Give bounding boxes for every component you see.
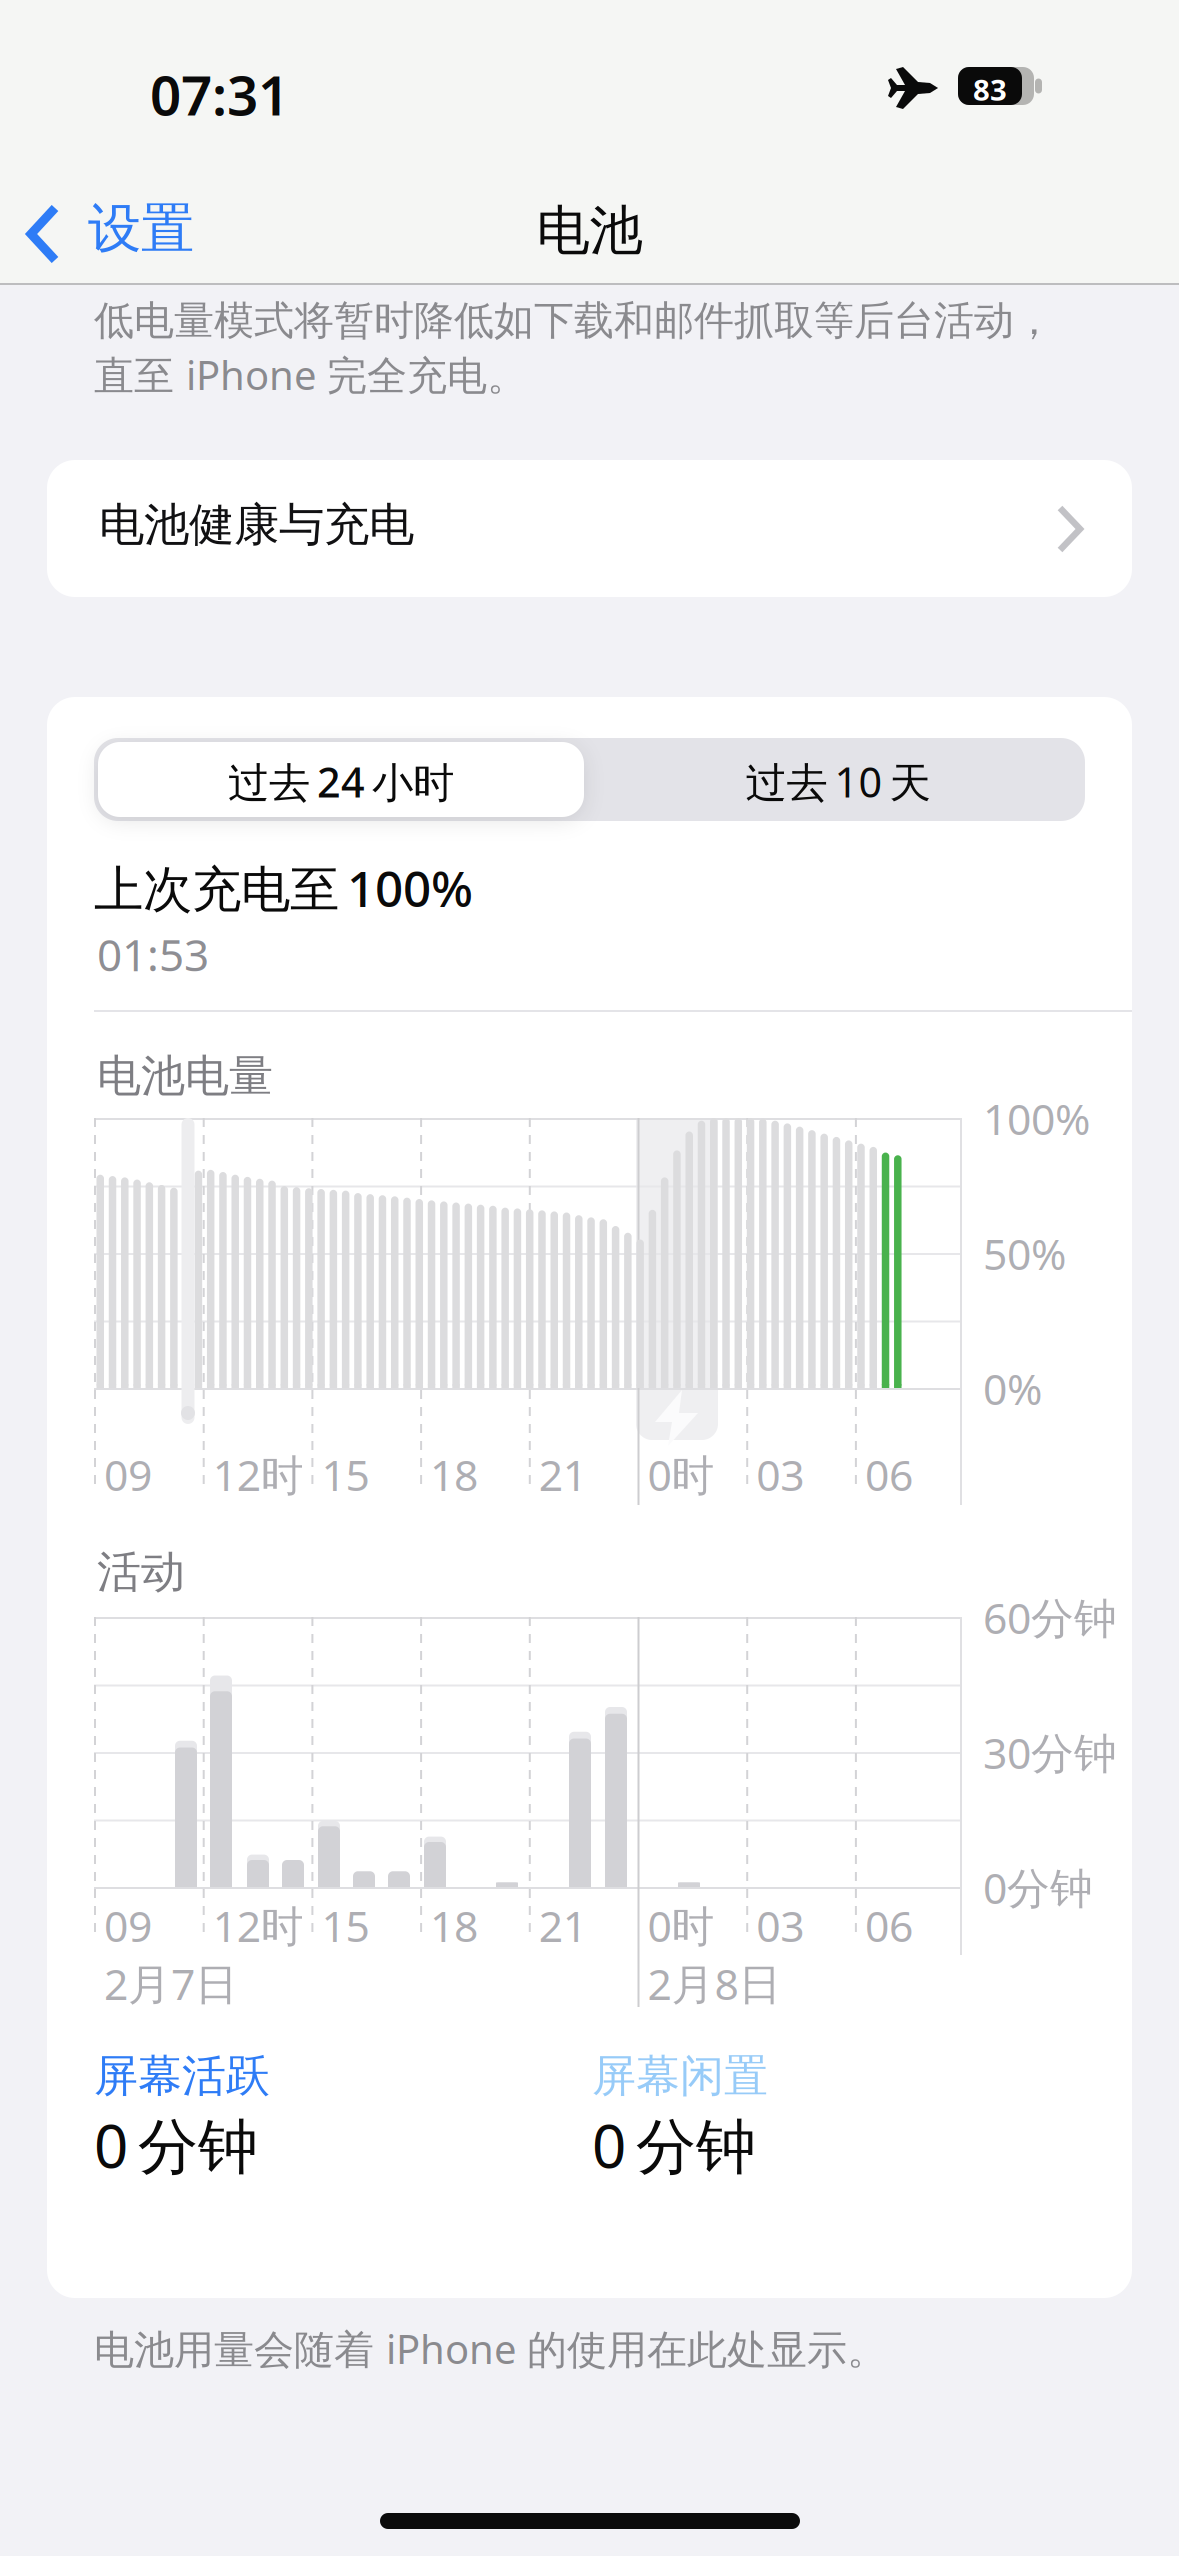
staticText: 06	[865, 1446, 913, 1503]
staticText: 30分钟	[983, 1724, 1117, 1781]
staticText: 电池健康与充电	[99, 497, 414, 553]
staticText: 15	[321, 1446, 369, 1503]
staticText: 09	[104, 1897, 152, 1954]
staticText: 15	[321, 1897, 369, 1954]
button[interactable]	[98, 742, 584, 817]
staticText: 07:31	[150, 58, 289, 131]
staticText: 0时	[647, 1446, 714, 1503]
staticText: 电池用量会随着 iPhone 的使用在此处显示。	[94, 2322, 887, 2375]
staticText: 21	[539, 1897, 587, 1954]
staticText: 06	[865, 1897, 913, 1954]
staticText: 18	[430, 1446, 478, 1503]
staticText: 60分钟	[983, 1589, 1117, 1646]
staticText: 过去 24 小时	[228, 754, 454, 809]
staticText: 12时	[213, 1446, 304, 1503]
staticText: 过去 10 天	[745, 754, 930, 809]
staticText: 03	[756, 1897, 804, 1954]
staticText: 18	[430, 1897, 478, 1954]
button[interactable]: 设置	[26, 196, 236, 272]
staticText: 03	[756, 1446, 804, 1503]
staticText: 21	[539, 1446, 587, 1503]
staticText: 01:53	[97, 925, 209, 983]
staticText: 0 分钟	[592, 2105, 756, 2185]
staticText: 09	[104, 1446, 152, 1503]
staticText: 活动	[97, 1545, 185, 1599]
staticText: 上次充电至 100%	[94, 855, 473, 920]
staticText: 屏幕活跃	[94, 2049, 270, 2103]
staticText: 2月8日	[647, 1955, 781, 2012]
staticText: 0时	[647, 1897, 714, 1954]
staticText: 50%	[983, 1225, 1066, 1282]
staticText: 低电量模式将暂时降低如下载和邮件抓取等后台活动，	[94, 296, 1054, 345]
staticText: 2月7日	[104, 1955, 238, 2012]
staticText: 直至 iPhone 完全充电。	[94, 348, 527, 401]
staticText: 0 分钟	[94, 2105, 258, 2185]
staticText: 设置	[88, 196, 194, 261]
staticText: 电池电量	[97, 1049, 273, 1103]
staticText: 12时	[213, 1897, 304, 1954]
staticText: 0%	[983, 1360, 1042, 1417]
staticText: 83	[973, 70, 1007, 109]
staticText: 0分钟	[983, 1859, 1093, 1916]
staticText: 屏幕闲置	[592, 2049, 768, 2103]
staticText: 100%	[983, 1090, 1090, 1147]
button[interactable]	[594, 742, 1080, 817]
button[interactable]: 电池健康与充电	[47, 460, 1132, 597]
staticText: 电池	[536, 198, 642, 263]
